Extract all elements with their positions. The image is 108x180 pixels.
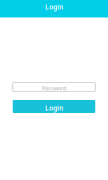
staticText: Login	[45, 104, 63, 112]
staticText: Login	[45, 2, 63, 11]
staticText: Password	[42, 85, 66, 92]
button[interactable]: Login	[13, 100, 95, 113]
